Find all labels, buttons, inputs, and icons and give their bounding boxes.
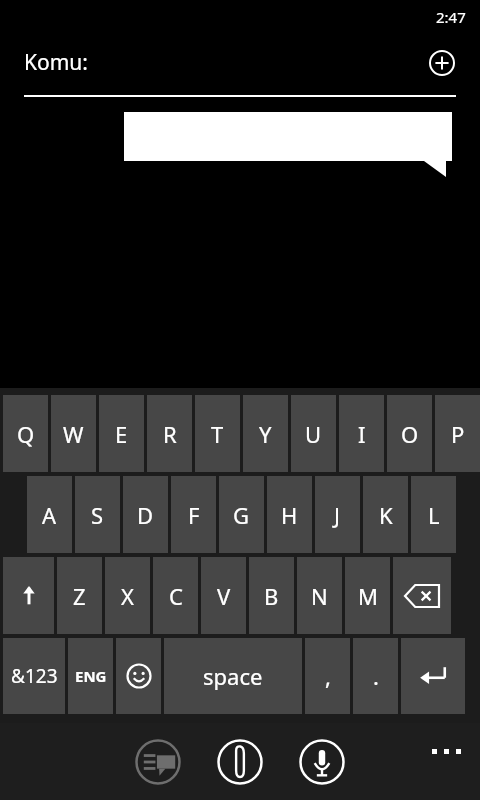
- button[interactable]: space: [164, 638, 302, 714]
- staticText: X: [121, 581, 134, 611]
- button[interactable]: ENG: [68, 638, 113, 714]
- button[interactable]: N: [297, 557, 342, 634]
- button[interactable]: Voice input: [291, 731, 353, 793]
- button[interactable]: [3, 557, 54, 634]
- button[interactable]: ,: [305, 638, 350, 714]
- staticText: E: [115, 419, 128, 449]
- staticText: K: [379, 500, 393, 530]
- button[interactable]: X: [105, 557, 150, 634]
- button[interactable]: U: [291, 395, 336, 472]
- staticText: space: [203, 661, 263, 691]
- staticText: ENG: [75, 666, 107, 686]
- staticText: Komu:: [24, 48, 88, 77]
- button[interactable]: C: [153, 557, 198, 634]
- staticText: &123: [11, 663, 58, 689]
- button[interactable]: &123: [3, 638, 65, 714]
- button[interactable]: G: [219, 476, 264, 553]
- staticText: L: [428, 500, 440, 530]
- button[interactable]: F: [171, 476, 216, 553]
- button[interactable]: Add recipient: [428, 49, 456, 77]
- button[interactable]: E: [99, 395, 144, 472]
- staticText: B: [264, 581, 279, 611]
- button[interactable]: Enter: [401, 638, 465, 714]
- button[interactable]: T: [195, 395, 240, 472]
- staticText: I: [358, 419, 366, 449]
- staticText: P: [451, 419, 465, 449]
- button[interactable]: S: [75, 476, 120, 553]
- button[interactable]: R: [147, 395, 192, 472]
- button[interactable]: Send: [127, 731, 189, 793]
- button[interactable]: K: [363, 476, 408, 553]
- button[interactable]: Q: [3, 395, 48, 472]
- staticText: Q: [17, 419, 35, 449]
- button[interactable]: P: [435, 395, 480, 472]
- staticText: O: [401, 419, 419, 449]
- button[interactable]: O: [387, 395, 432, 472]
- staticText: A: [42, 500, 57, 530]
- button[interactable]: A: [27, 476, 72, 553]
- staticText: U: [305, 419, 322, 449]
- button[interactable]: More options: [426, 741, 466, 761]
- staticText: C: [169, 581, 183, 611]
- staticText: M: [358, 581, 378, 611]
- staticText: S: [91, 500, 104, 530]
- button[interactable]: Z: [57, 557, 102, 634]
- staticText: J: [334, 500, 341, 530]
- button[interactable]: .: [353, 638, 398, 714]
- staticText: T: [211, 419, 224, 449]
- staticText: G: [233, 500, 250, 530]
- staticText: Z: [73, 581, 86, 611]
- button[interactable]: H: [267, 476, 312, 553]
- button[interactable]: Backspace: [393, 557, 451, 634]
- staticText: V: [217, 581, 231, 611]
- button[interactable]: B: [249, 557, 294, 634]
- staticText: 2:47: [436, 7, 466, 27]
- button[interactable]: I: [339, 395, 384, 472]
- button[interactable]: W: [51, 395, 96, 472]
- button[interactable]: [116, 638, 161, 714]
- button[interactable]: M: [345, 557, 390, 634]
- staticText: W: [63, 419, 84, 449]
- staticText: D: [137, 500, 154, 530]
- button[interactable]: D: [123, 476, 168, 553]
- staticText: Y: [259, 419, 272, 449]
- button[interactable]: Attach: [209, 731, 271, 793]
- staticText: N: [311, 581, 328, 611]
- staticText: R: [163, 419, 177, 449]
- staticText: .: [373, 661, 379, 691]
- staticText: ,: [325, 661, 331, 691]
- button[interactable]: V: [201, 557, 246, 634]
- button[interactable]: Y: [243, 395, 288, 472]
- button[interactable]: L: [411, 476, 456, 553]
- staticText: F: [188, 500, 200, 530]
- staticText: H: [281, 500, 298, 530]
- button[interactable]: J: [315, 476, 360, 553]
